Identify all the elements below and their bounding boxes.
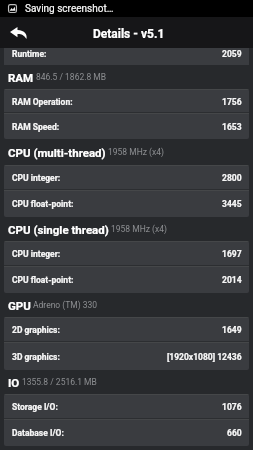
- staticText: 1958 MHz (x4): [108, 147, 164, 157]
- button[interactable]: 3D graphics:: [4, 343, 249, 370]
- staticText: 1756: [222, 97, 242, 107]
- staticText: 660: [227, 428, 242, 438]
- staticText: IO: [8, 376, 20, 389]
- button[interactable]: RAM Speed:: [4, 114, 249, 139]
- staticText: Adreno (TM) 330: [33, 300, 98, 310]
- staticText: CPU (multi-thread): [8, 146, 106, 159]
- staticText: 1355.8 / 2516.1 MB: [22, 377, 97, 387]
- staticText: Saving screenshot…: [25, 3, 114, 15]
- staticText: 1653: [222, 122, 242, 132]
- button[interactable]: Runtime:: [4, 48, 249, 65]
- staticText: Storage I/O:: [12, 402, 58, 412]
- staticText: CPU float-point:: [12, 275, 74, 285]
- button[interactable]: RAM Operation:: [4, 89, 249, 114]
- staticText: CPU integer:: [12, 173, 61, 183]
- staticText: CPU (single thread): [8, 223, 109, 236]
- staticText: Runtime:: [12, 49, 47, 59]
- staticText: 1649: [222, 325, 242, 335]
- staticText: 2059: [222, 49, 242, 59]
- button[interactable]: CPU integer:: [4, 165, 249, 191]
- staticText: RAM: [8, 71, 34, 84]
- staticText: 3445: [222, 199, 242, 209]
- button[interactable]: CPU float-point:: [4, 191, 249, 217]
- staticText: 846.5 / 1862.8 MB: [36, 72, 107, 82]
- staticText: 2014: [222, 275, 242, 285]
- staticText: CPU float-point:: [12, 199, 74, 209]
- staticText: Database I/O:: [12, 428, 64, 438]
- button[interactable]: Database I/O:: [4, 420, 249, 446]
- staticText: 2800: [222, 173, 242, 183]
- staticText: 1958 MHz (x4): [111, 224, 167, 234]
- staticText: CPU integer:: [12, 249, 61, 259]
- button[interactable]: Storage I/O:: [4, 394, 249, 420]
- button[interactable]: CPU integer:: [4, 241, 249, 267]
- button[interactable]: Back: [4, 18, 33, 47]
- button[interactable]: CPU float-point:: [4, 267, 249, 293]
- staticText: Details - v5.1: [93, 27, 165, 41]
- button[interactable]: 2D graphics:: [4, 317, 249, 343]
- staticText: 1697: [222, 249, 242, 259]
- staticText: 1076: [222, 402, 242, 412]
- staticText: 3D graphics:: [12, 352, 60, 362]
- staticText: [1920x1080] 12436: [167, 352, 242, 362]
- staticText: 2D graphics:: [12, 325, 60, 335]
- staticText: GPU: [8, 299, 31, 312]
- staticText: RAM Operation:: [12, 97, 73, 107]
- staticText: RAM Speed:: [12, 122, 60, 132]
